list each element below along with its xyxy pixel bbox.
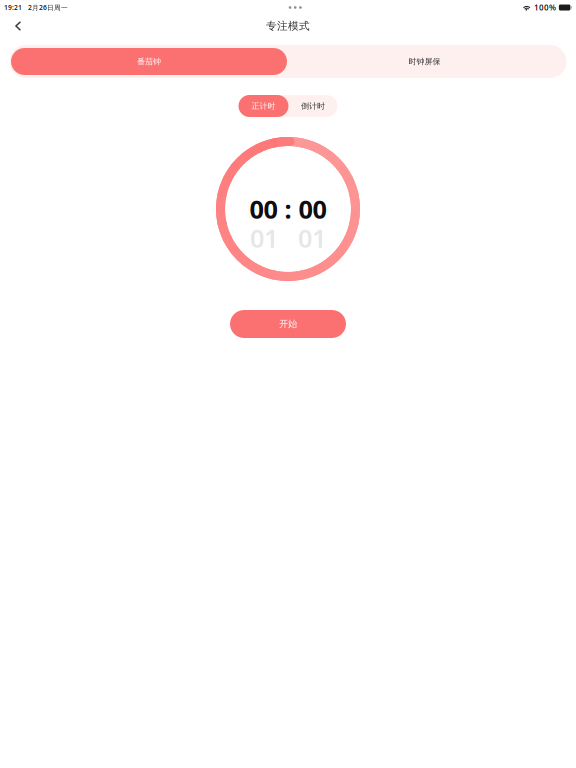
staticText: 专注模式 [266,19,310,32]
button[interactable]: 倒计时 [288,95,337,117]
staticText: 01 [298,221,326,255]
staticText: 番茄钟 [137,57,161,66]
staticText: 01 [250,221,278,255]
button[interactable]: Back [4,15,32,37]
staticText: 开始 [279,318,297,330]
staticText: 00 : 00 [249,192,326,226]
button[interactable]: 时钟屏保 [287,48,562,75]
button[interactable]: 开始 [230,310,346,338]
button[interactable]: 正计时 [238,95,288,117]
staticText: 倒计时 [301,101,325,111]
staticText: 19:21 2月26日周一 [4,3,68,12]
staticText: 100% [534,2,556,13]
staticText: 时钟屏保 [408,57,440,66]
button[interactable]: 番茄钟 [11,48,287,75]
staticText: 正计时 [251,101,275,111]
